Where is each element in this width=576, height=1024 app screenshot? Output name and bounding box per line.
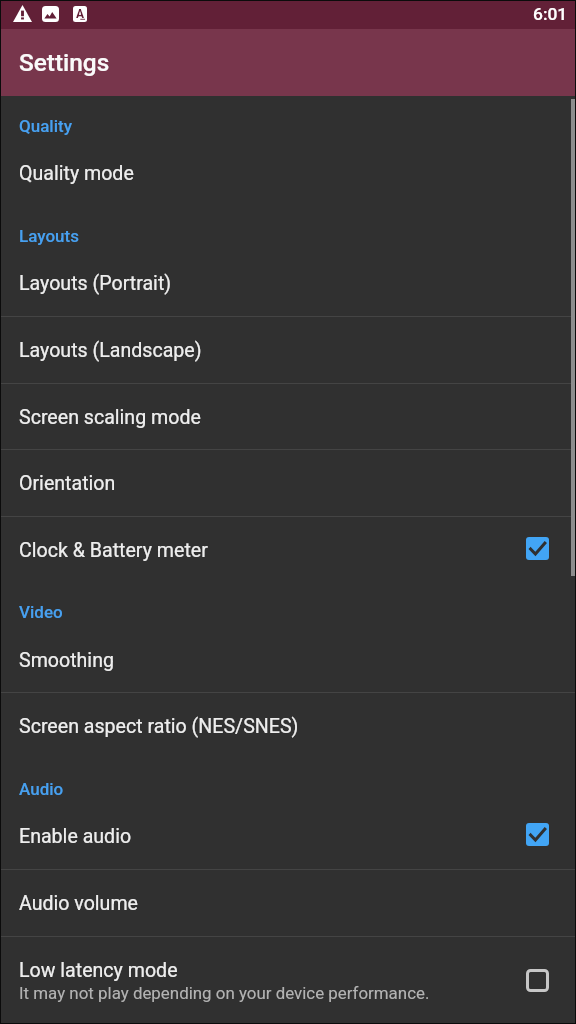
button[interactable]: Layouts (Portrait) [0,250,576,316]
staticText: Low latency mode [19,959,178,982]
staticText: Smoothing [19,649,114,672]
other: Warning [13,5,32,22]
other: Keyboard layout [73,6,87,22]
button[interactable]: Low latency mode [0,937,576,1024]
staticText: 6:01 [533,4,568,24]
button[interactable]: Low latency mode, not checked [520,963,555,998]
button[interactable]: Orientation [0,450,576,516]
button[interactable]: Screen aspect ratio (NES/SNES) [0,693,576,759]
staticText: Quality mode [19,162,134,185]
button[interactable]: Quality mode [0,140,576,206]
other: Screenshot saved [42,6,59,22]
staticText: Enable audio [19,825,132,848]
staticText: It may not play depending on your device… [19,983,430,1003]
staticText: Orientation [19,472,116,495]
staticText: Audio volume [19,892,138,915]
staticText: Layouts (Portrait) [19,272,172,295]
button[interactable]: Smoothing [0,627,576,693]
button[interactable]: Clock & Battery meter, checked [520,531,555,566]
staticText: Layouts (Landscape) [19,339,202,362]
button[interactable]: Audio volume [0,870,576,936]
staticText: A [76,7,85,21]
staticText: Settings [19,48,110,77]
staticText: Screen scaling mode [19,406,201,429]
button[interactable]: Clock & Battery meter [0,517,576,583]
staticText: Video [19,602,63,622]
staticText: Quality [19,116,72,136]
button[interactable]: Screen scaling mode [0,384,576,450]
button[interactable]: Layouts (Landscape) [0,317,576,383]
staticText: Audio [19,779,64,799]
staticText: Clock & Battery meter [19,539,208,562]
staticText: Screen aspect ratio (NES/SNES) [19,715,299,738]
button[interactable]: Enable audio, checked [520,817,555,852]
button[interactable]: Enable audio [0,803,576,869]
staticText: Layouts [19,226,79,246]
